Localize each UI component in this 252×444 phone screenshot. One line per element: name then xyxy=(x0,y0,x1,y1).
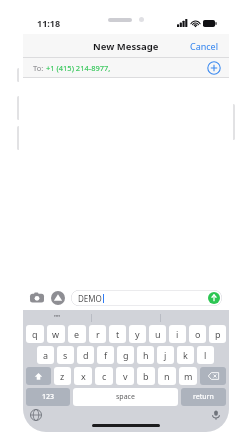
staticText: z xyxy=(60,370,65,382)
button[interactable]: n xyxy=(158,367,176,385)
button[interactable]: m xyxy=(179,367,197,385)
staticText: u xyxy=(155,328,161,340)
button[interactable]: x xyxy=(74,367,92,385)
staticText: f xyxy=(104,349,108,361)
button[interactable]: Shift xyxy=(26,367,51,385)
staticText: y xyxy=(135,328,140,340)
button[interactable]: k xyxy=(177,346,194,364)
staticText: c xyxy=(102,370,107,382)
staticText: p xyxy=(215,328,221,340)
staticText: n xyxy=(164,370,170,382)
button[interactable]: DEMO xyxy=(71,290,222,306)
button[interactable]: Dictate xyxy=(210,409,222,421)
button[interactable]: q xyxy=(26,325,44,343)
button[interactable]: l xyxy=(197,346,214,364)
staticText: q xyxy=(32,328,38,340)
button[interactable]: j xyxy=(157,346,174,364)
staticText: m xyxy=(184,370,193,382)
staticText: t xyxy=(116,328,120,340)
staticText: l xyxy=(204,349,207,361)
button[interactable]: p xyxy=(209,325,226,343)
button[interactable]: o xyxy=(189,325,206,343)
staticText: j xyxy=(164,349,167,361)
button[interactable]: v xyxy=(116,367,134,385)
button[interactable]: r xyxy=(89,325,106,343)
button[interactable]: Send xyxy=(208,292,220,304)
staticText: k xyxy=(183,349,188,361)
staticText: g xyxy=(123,349,129,361)
button[interactable]: g xyxy=(117,346,134,364)
button[interactable]: "" xyxy=(23,310,91,325)
staticText: Cancel xyxy=(190,40,219,52)
staticText: w xyxy=(52,328,60,340)
button[interactable]: w xyxy=(47,325,65,343)
button[interactable]: u xyxy=(149,325,166,343)
button[interactable]: c xyxy=(95,367,113,385)
button[interactable]: s xyxy=(57,346,74,364)
staticText: x xyxy=(81,370,86,382)
button[interactable]: d xyxy=(77,346,94,364)
button[interactable]: Apps xyxy=(51,291,65,305)
button[interactable]: Camera xyxy=(30,291,44,305)
staticText: "" xyxy=(54,313,61,323)
staticText: s xyxy=(63,349,68,361)
button[interactable]: Switch keyboard xyxy=(30,409,42,421)
staticText: d xyxy=(83,349,89,361)
button[interactable]: h xyxy=(137,346,154,364)
button[interactable]: return xyxy=(181,388,226,406)
staticText: b xyxy=(143,370,149,382)
button[interactable]: Backspace xyxy=(200,367,226,385)
staticText: To: xyxy=(33,63,46,73)
button[interactable]: y xyxy=(129,325,146,343)
staticText: i xyxy=(176,328,179,340)
staticText: 123 xyxy=(42,392,55,402)
staticText: +1 (415) 214-8977, xyxy=(46,63,111,73)
button[interactable]: i xyxy=(169,325,186,343)
button[interactable]: Cancel xyxy=(180,36,229,56)
button[interactable]: a xyxy=(37,346,54,364)
button[interactable]: b xyxy=(137,367,155,385)
staticText: DEMO xyxy=(78,293,102,304)
staticText: o xyxy=(195,328,201,340)
staticText: space xyxy=(116,392,135,402)
button[interactable]: z xyxy=(54,367,71,385)
button[interactable]: space xyxy=(73,388,178,406)
staticText: New Message xyxy=(93,40,159,53)
staticText: e xyxy=(74,328,80,340)
button[interactable]: t xyxy=(109,325,126,343)
button[interactable]: e xyxy=(68,325,86,343)
button[interactable]: Add contact xyxy=(207,61,221,75)
button[interactable]: To: xyxy=(23,58,229,78)
staticText: h xyxy=(143,349,149,361)
staticText: return xyxy=(193,392,214,402)
staticText: r xyxy=(96,328,100,340)
staticText: v xyxy=(123,370,128,382)
button[interactable]: f xyxy=(97,346,114,364)
staticText: a xyxy=(43,349,49,361)
staticText: 11:18 xyxy=(37,17,61,29)
button[interactable]: 123 xyxy=(26,388,70,406)
